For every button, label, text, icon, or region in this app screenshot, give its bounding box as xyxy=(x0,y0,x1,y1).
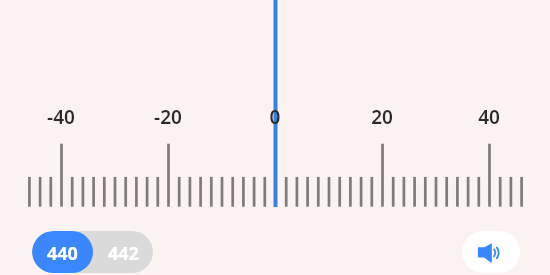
button[interactable]: Play reference tone xyxy=(462,231,520,273)
staticText: -20 xyxy=(128,104,208,130)
staticText: 442 xyxy=(108,241,139,266)
button[interactable]: 442 xyxy=(93,231,153,273)
staticText: -40 xyxy=(21,104,101,130)
button[interactable]: 440 xyxy=(32,231,93,273)
staticText: 20 xyxy=(342,104,422,130)
staticText: 0 xyxy=(235,104,315,130)
staticText: 440 xyxy=(47,241,78,266)
staticText: 40 xyxy=(449,104,529,130)
